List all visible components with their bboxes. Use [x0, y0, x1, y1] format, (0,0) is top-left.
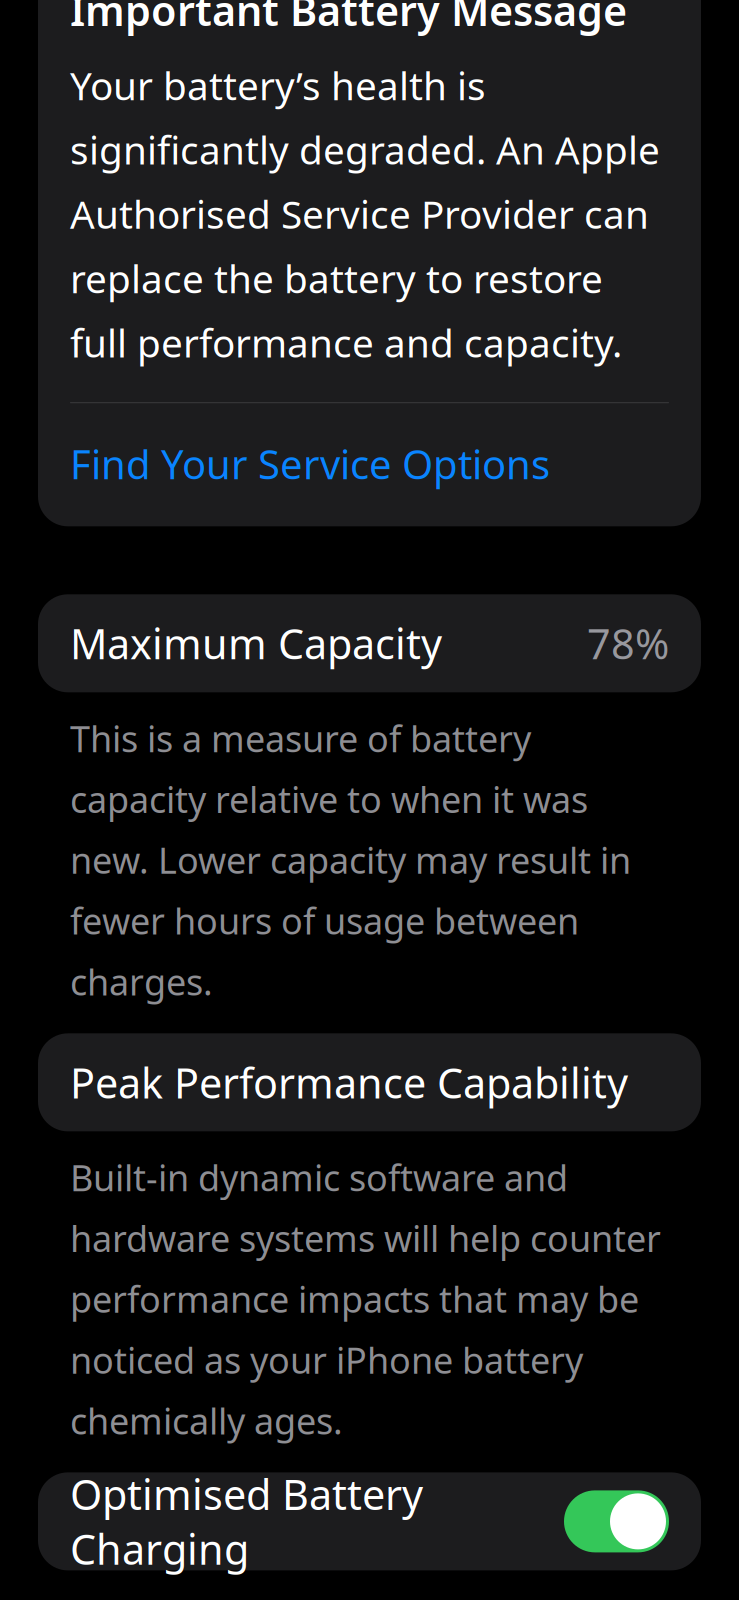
button[interactable]: Peak Performance Capability [38, 1033, 701, 1131]
button[interactable]: Maximum Capacity [38, 594, 701, 692]
staticText: Peak Performance Capability [70, 1055, 628, 1110]
staticText: Important Battery Message [70, 0, 627, 37]
staticText: Find Your Service Options [70, 437, 550, 490]
staticText: This is a measure of battery capacity re… [70, 714, 631, 1005]
button[interactable]: Optimised Battery Charging [564, 1490, 669, 1552]
staticText: Your battery’s health is significantly d… [70, 59, 660, 368]
staticText: Built-in dynamic software and hardware s… [70, 1153, 661, 1444]
staticText: Optimised Battery Charging [70, 1466, 423, 1576]
staticText: Maximum Capacity [70, 616, 442, 671]
staticText: 78% [587, 616, 669, 671]
button[interactable]: Find Your Service Options [70, 403, 669, 496]
